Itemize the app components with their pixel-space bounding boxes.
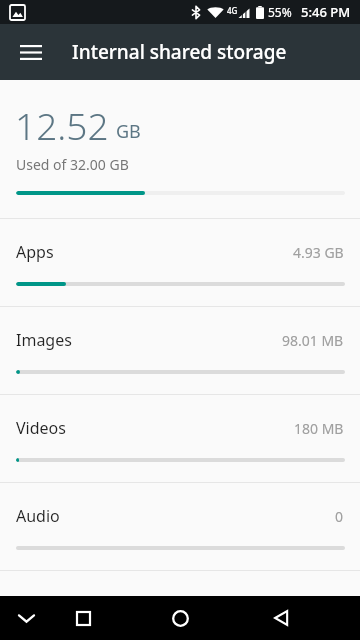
- button[interactable]: Other: [0, 571, 360, 640]
- staticText: 98.01 MB: [282, 331, 344, 350]
- staticText: 4.93 GB: [293, 243, 344, 262]
- staticText: Images: [16, 329, 72, 351]
- button[interactable]: Home: [158, 596, 202, 640]
- staticText: 4G: [227, 5, 238, 16]
- staticText: 12.52: [15, 100, 109, 150]
- button[interactable]: Recent apps: [61, 596, 105, 640]
- button[interactable]: Videos: [0, 395, 360, 483]
- staticText: GB: [116, 119, 141, 144]
- button[interactable]: Audio: [0, 483, 360, 571]
- button[interactable]: Hide keyboard: [4, 596, 48, 640]
- staticText: 1.33 MB: [290, 595, 344, 614]
- staticText: Other: [16, 593, 60, 615]
- staticText: 55%: [268, 4, 292, 20]
- button[interactable]: Open navigation drawer: [7, 28, 55, 76]
- staticText: 5:46 PM: [301, 3, 351, 21]
- staticText: Apps: [16, 241, 54, 263]
- staticText: 0: [335, 507, 344, 526]
- button[interactable]: Back: [259, 596, 303, 640]
- button[interactable]: Images: [0, 307, 360, 395]
- staticText: Audio: [16, 505, 60, 527]
- button[interactable]: Apps: [0, 219, 360, 307]
- staticText: Used of 32.00 GB: [16, 155, 129, 174]
- staticText: 180 MB: [294, 419, 344, 438]
- staticText: Internal shared storage: [72, 39, 287, 65]
- staticText: Videos: [16, 417, 66, 439]
